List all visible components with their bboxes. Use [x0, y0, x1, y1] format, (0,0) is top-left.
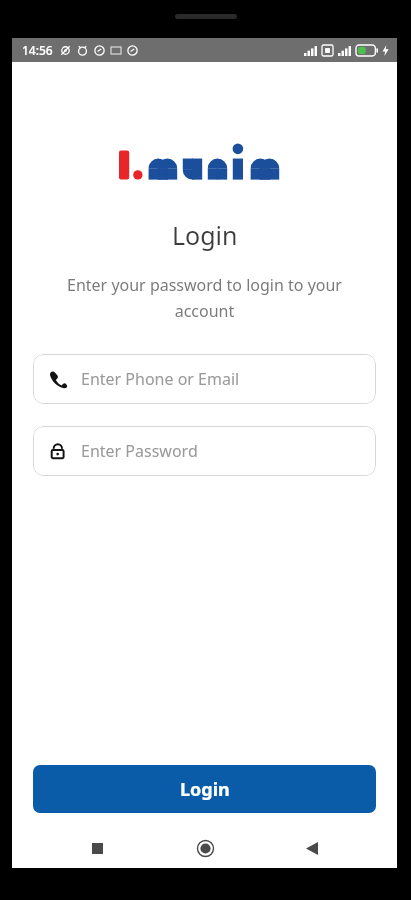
staticText: Enter your password to login to your acc…	[44, 274, 365, 322]
staticText: Enter Phone or Email	[81, 368, 240, 390]
staticText: Enter Password	[81, 440, 198, 462]
button[interactable]: Recent apps	[75, 828, 119, 868]
button[interactable]: Login	[33, 765, 376, 813]
staticText: 14:56	[22, 42, 53, 58]
button[interactable]: Back	[290, 828, 334, 868]
staticText: Login	[172, 218, 238, 252]
other: Imunim logo	[119, 148, 291, 182]
button[interactable]: Enter Password	[33, 426, 376, 476]
staticText: Login	[180, 777, 230, 802]
button[interactable]: Enter Phone or Email	[33, 354, 376, 404]
button[interactable]: Home	[183, 828, 227, 868]
